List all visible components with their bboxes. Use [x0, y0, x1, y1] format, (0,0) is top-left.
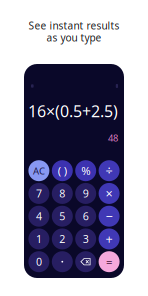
- staticText: 48: [108, 132, 118, 144]
- button[interactable]: Delete: [75, 251, 96, 272]
- staticText: 2: [59, 232, 65, 246]
- button[interactable]: ÷: [99, 160, 120, 181]
- button[interactable]: 5: [52, 206, 73, 227]
- staticText: =: [106, 254, 112, 269]
- button[interactable]: Decimal point: [52, 251, 73, 272]
- button[interactable]: −: [99, 206, 120, 227]
- button[interactable]: =: [99, 251, 120, 272]
- button[interactable]: 0: [28, 251, 49, 272]
- staticText: 1: [36, 232, 42, 246]
- staticText: 8: [59, 186, 65, 201]
- button[interactable]: 4: [28, 206, 49, 227]
- staticText: ( ): [58, 163, 67, 178]
- button[interactable]: 7: [28, 183, 49, 204]
- staticText: See instant results: [28, 19, 119, 32]
- button[interactable]: AC: [28, 160, 49, 181]
- staticText: 4: [36, 209, 42, 223]
- button[interactable]: 8: [52, 183, 73, 204]
- staticText: 16×(0.5+2.5): [28, 100, 118, 122]
- staticText: AC: [33, 164, 45, 177]
- button[interactable]: 1: [28, 228, 49, 249]
- staticText: %: [81, 163, 90, 178]
- staticText: +: [106, 230, 113, 248]
- button[interactable]: 2: [52, 228, 73, 249]
- button[interactable]: %: [75, 160, 96, 181]
- button[interactable]: 6: [75, 206, 96, 227]
- button[interactable]: 9: [75, 183, 96, 204]
- button[interactable]: History: [27, 80, 38, 92]
- staticText: 3: [83, 232, 89, 246]
- button[interactable]: Appearance: [112, 80, 122, 92]
- button[interactable]: ×: [99, 183, 120, 204]
- staticText: ×: [106, 185, 113, 202]
- staticText: 7: [36, 186, 42, 201]
- staticText: 0: [36, 254, 42, 269]
- staticText: ÷: [106, 162, 113, 179]
- staticText: as you type: [46, 31, 101, 44]
- button[interactable]: 3: [75, 228, 96, 249]
- staticText: 9: [83, 186, 89, 201]
- button[interactable]: ( ): [52, 160, 73, 181]
- staticText: 6: [83, 209, 89, 223]
- staticText: 5: [59, 209, 65, 223]
- button[interactable]: +: [99, 228, 120, 249]
- staticText: −: [106, 208, 113, 225]
